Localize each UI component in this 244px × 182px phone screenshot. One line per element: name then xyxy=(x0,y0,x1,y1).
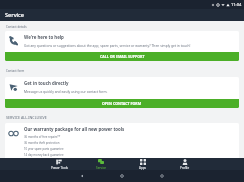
button[interactable]: Recents xyxy=(142,170,182,182)
staticText: Message us quickly and easily using our … xyxy=(24,89,108,93)
staticText: 36 months of free repairs** 36 months th… xyxy=(24,135,64,157)
button[interactable]: Back xyxy=(62,170,102,182)
staticText: OPEN CONTACT FORM xyxy=(102,101,142,106)
button[interactable]: CALL OR EMAIL SUPPORT xyxy=(5,52,239,61)
staticText: Power Tools xyxy=(51,166,68,170)
button[interactable]: Profile xyxy=(164,158,206,170)
staticText: Get in touch directly xyxy=(24,80,69,86)
staticText: Apps xyxy=(139,166,147,170)
staticText: Our warranty package for all new power t… xyxy=(24,126,125,132)
button[interactable]: Power Tools xyxy=(38,158,80,170)
button[interactable]: Home xyxy=(102,170,142,182)
button[interactable]: Service xyxy=(80,158,122,170)
staticText: Service xyxy=(5,11,25,19)
staticText: Profile xyxy=(180,166,190,170)
button[interactable]: Apps xyxy=(122,158,164,170)
button[interactable]: OPEN CONTACT FORM xyxy=(5,99,239,108)
staticText: Got any questions or suggestions about t… xyxy=(24,43,191,47)
staticText: Service xyxy=(96,166,107,170)
staticText: CALL OR EMAIL SUPPORT xyxy=(100,54,145,59)
staticText: 11:04 xyxy=(231,2,242,7)
staticText: Contact form xyxy=(6,69,25,73)
staticText: We're here to help xyxy=(24,34,64,40)
staticText: Contact details xyxy=(6,25,27,29)
staticText: SERVICE ALL-INCLUSIVE xyxy=(6,115,47,120)
